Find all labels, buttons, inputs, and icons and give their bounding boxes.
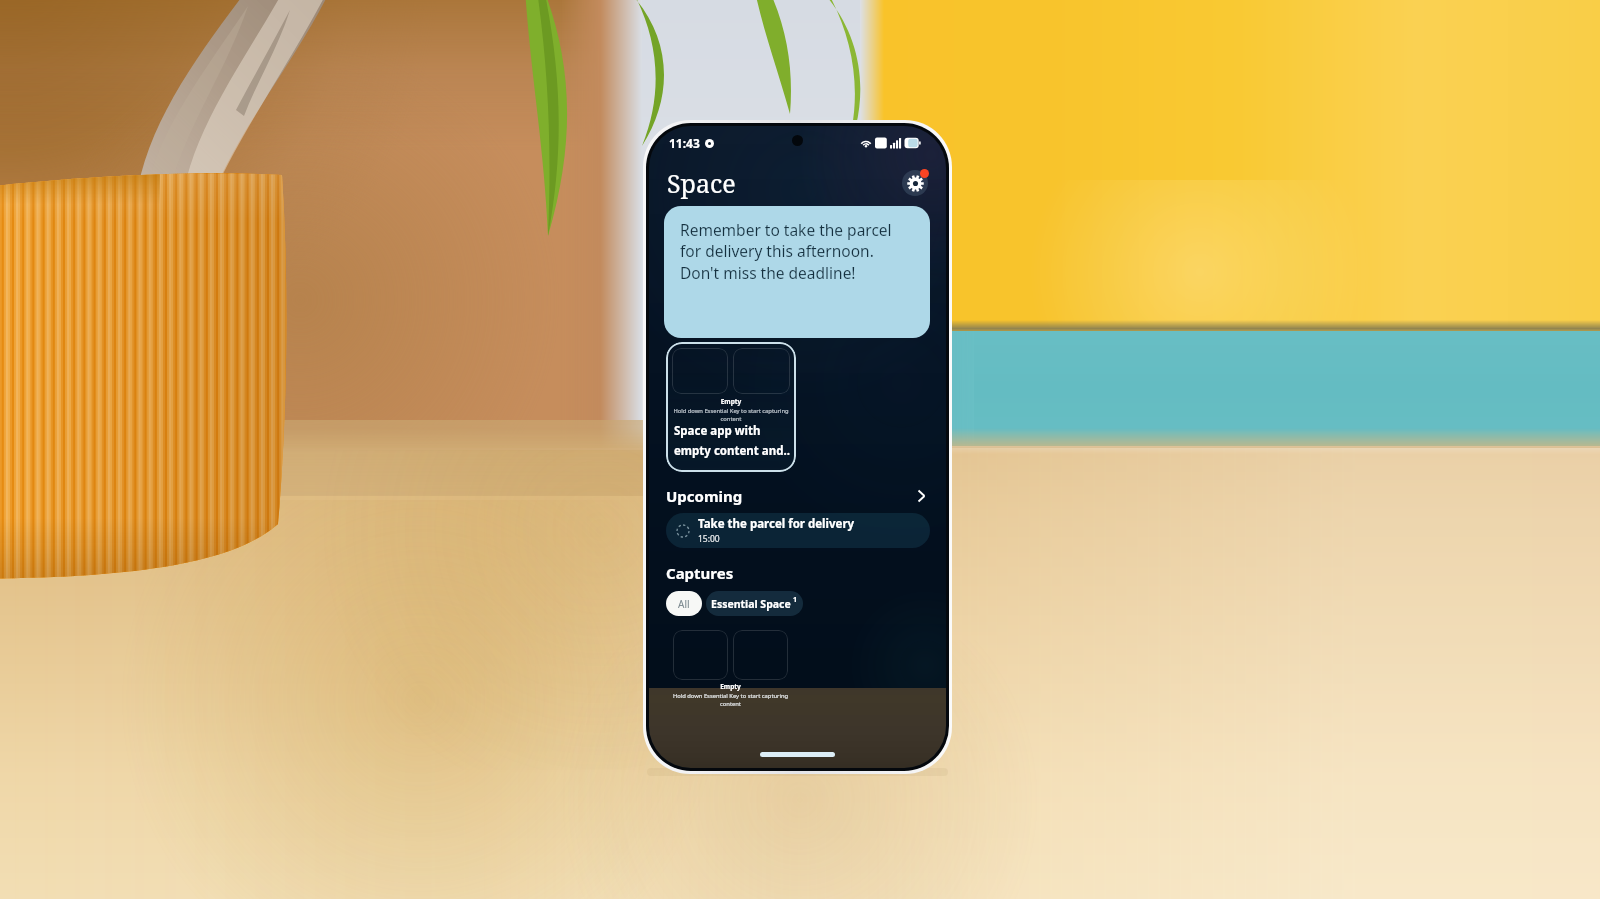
staticText: 11:43 <box>669 135 700 151</box>
staticText: 15:00 <box>698 533 720 545</box>
staticText: Essential Space <box>711 597 791 611</box>
button[interactable]: Take the parcel for delivery <box>666 513 930 548</box>
staticText: empty content and... <box>674 443 790 459</box>
staticText: All <box>678 597 690 611</box>
staticText: Empty <box>668 682 793 691</box>
staticText: Space app with <box>674 423 761 439</box>
button[interactable]: Remember to take the parcel for delivery… <box>664 206 930 338</box>
button[interactable]: Empty <box>666 342 796 472</box>
button[interactable]: Settings <box>900 168 930 198</box>
staticText: Captures <box>666 563 734 583</box>
button[interactable]: All <box>666 591 702 616</box>
staticText: Upcoming <box>666 486 743 506</box>
staticText: Hold down Essential Key to start capturi… <box>668 692 793 708</box>
staticText: Empty <box>672 397 790 406</box>
staticText: Space <box>667 166 736 200</box>
button[interactable]: Essential Space <box>706 591 803 616</box>
staticText: Hold down Essential Key to start capturi… <box>672 407 790 423</box>
staticText: Remember to take the parcel for delivery… <box>680 219 892 283</box>
staticText: Take the parcel for delivery <box>698 516 855 532</box>
button[interactable]: See all upcoming <box>913 487 931 505</box>
staticText: 1 <box>793 595 798 605</box>
